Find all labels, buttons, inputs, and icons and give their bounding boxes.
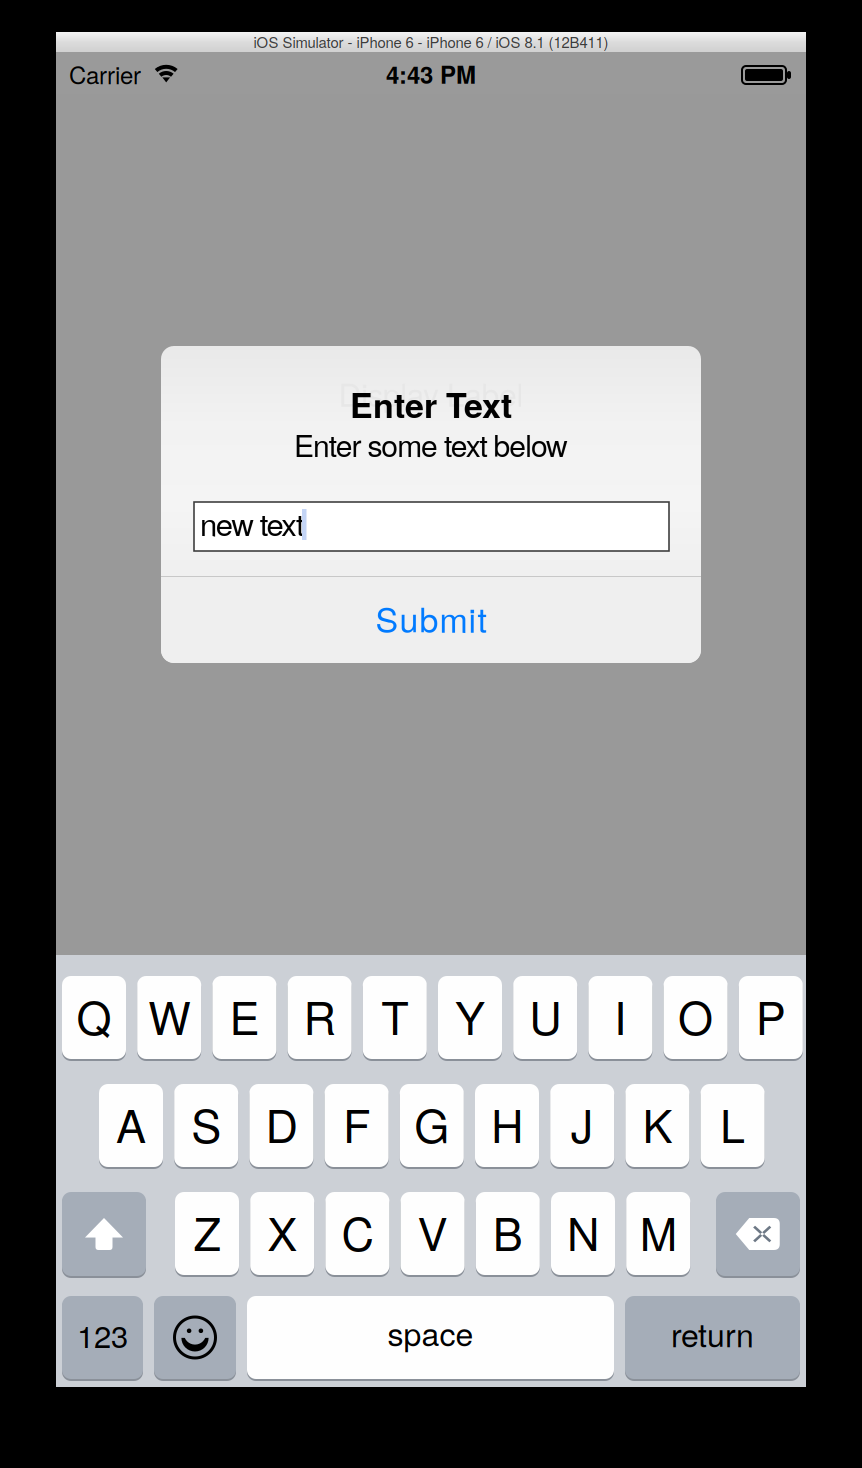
- button[interactable]: K: [625, 1084, 689, 1167]
- staticText: N: [567, 1199, 599, 1264]
- staticText: L: [720, 1091, 745, 1156]
- button[interactable]: V: [401, 1192, 465, 1275]
- button[interactable]: N: [551, 1192, 615, 1275]
- staticText: C: [341, 1199, 373, 1264]
- staticText: 4:43 PM: [386, 57, 476, 91]
- staticText: Display Label: [339, 370, 523, 416]
- staticText: E: [229, 983, 259, 1048]
- button[interactable]: Shift: [62, 1192, 146, 1276]
- button[interactable]: Z: [175, 1192, 239, 1275]
- button[interactable]: T: [363, 976, 427, 1059]
- button[interactable]: space: [247, 1296, 614, 1379]
- staticText: U: [529, 983, 561, 1048]
- button[interactable]: F: [325, 1084, 389, 1167]
- button[interactable]: I: [588, 976, 652, 1059]
- button[interactable]: return: [625, 1296, 800, 1379]
- button[interactable]: C: [325, 1192, 389, 1275]
- staticText: Carrier: [69, 57, 141, 91]
- staticText: P: [756, 983, 786, 1048]
- staticText: I: [614, 983, 627, 1048]
- staticText: 123: [77, 1312, 128, 1357]
- staticText: H: [491, 1091, 523, 1156]
- button[interactable]: A: [99, 1084, 163, 1167]
- staticText: Q: [76, 983, 111, 1048]
- staticText: T: [381, 983, 408, 1048]
- button[interactable]: Submit: [161, 577, 701, 663]
- button[interactable]: E: [212, 976, 276, 1059]
- button[interactable]: U: [513, 976, 577, 1059]
- button[interactable]: D: [249, 1084, 313, 1167]
- staticText: F: [343, 1091, 370, 1156]
- button[interactable]: O: [664, 976, 728, 1059]
- staticText: S: [191, 1091, 221, 1156]
- staticText: return: [671, 1311, 754, 1356]
- staticText: Enter Text: [350, 380, 512, 428]
- staticText: X: [267, 1199, 297, 1264]
- staticText: Enter some text below: [294, 422, 568, 465]
- staticText: G: [414, 1091, 449, 1156]
- staticText: Y: [455, 983, 485, 1048]
- staticText: M: [640, 1199, 677, 1264]
- staticText: A: [116, 1091, 146, 1156]
- button[interactable]: M: [626, 1192, 690, 1275]
- staticText: Submit: [375, 594, 486, 642]
- button[interactable]: 123: [62, 1296, 143, 1379]
- button[interactable]: P: [739, 976, 803, 1059]
- button[interactable]: Emoji keyboard: [154, 1296, 236, 1379]
- button[interactable]: W: [137, 976, 201, 1059]
- button[interactable]: G: [400, 1084, 464, 1167]
- staticText: new text: [200, 500, 305, 545]
- staticText: B: [493, 1199, 523, 1264]
- staticText: O: [678, 983, 713, 1048]
- button[interactable]: J: [550, 1084, 614, 1167]
- button[interactable]: H: [475, 1084, 539, 1167]
- button[interactable]: S: [174, 1084, 238, 1167]
- button[interactable]: Q: [62, 976, 126, 1059]
- button[interactable]: X: [250, 1192, 314, 1275]
- staticText: R: [304, 983, 336, 1048]
- button[interactable]: L: [701, 1084, 765, 1167]
- staticText: V: [418, 1199, 448, 1264]
- staticText: Z: [193, 1199, 220, 1264]
- button[interactable]: Delete: [716, 1192, 800, 1276]
- button[interactable]: R: [288, 976, 352, 1059]
- button[interactable]: Y: [438, 976, 502, 1059]
- staticText: K: [642, 1091, 672, 1156]
- button[interactable]: B: [476, 1192, 540, 1275]
- staticText: W: [148, 983, 190, 1048]
- staticText: iOS Simulator - iPhone 6 - iPhone 6 / iO…: [253, 31, 608, 52]
- staticText: space: [387, 1310, 473, 1355]
- staticText: J: [571, 1091, 594, 1156]
- staticText: D: [265, 1091, 297, 1156]
